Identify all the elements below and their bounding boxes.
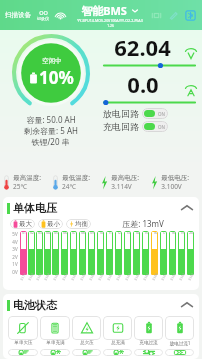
staticText: 05 [54, 231, 58, 235]
button[interactable]: 充电低温 [40, 349, 70, 356]
staticText: 11 [108, 231, 112, 235]
button[interactable]: 02 [27, 231, 35, 287]
button[interactable]: 单体电压 [7, 200, 195, 216]
button[interactable]: Edit [168, 10, 179, 21]
button[interactable] [104, 62, 195, 69]
staticText: 1V [12, 261, 18, 267]
button[interactable]: 最低电压: [150, 173, 200, 191]
button[interactable]: OO [37, 9, 49, 21]
staticText: 容量: 50.0 AH [26, 114, 76, 125]
staticText: 06 [63, 231, 67, 235]
button[interactable]: 06 [60, 231, 69, 287]
button[interactable]: 放电过流1 [165, 316, 194, 346]
staticText: 智能BMS [81, 3, 127, 18]
button[interactable]: 电池状态 [7, 297, 195, 313]
button[interactable]: 01 [19, 231, 27, 287]
staticText: 3.103 [124, 272, 132, 281]
button[interactable]: Layout [151, 10, 162, 21]
staticText: 09 [90, 231, 94, 235]
button[interactable]: 最大 [10, 219, 35, 229]
staticText: 总欠压 [80, 340, 94, 346]
staticText: OO [39, 9, 48, 16]
staticText: 最低电压: [161, 173, 189, 182]
button[interactable]: 最高电压: [100, 173, 150, 191]
button[interactable]: Wifi [55, 10, 66, 21]
staticText: 最高电压: [111, 173, 139, 182]
button[interactable]: 单串充满 [40, 316, 70, 346]
staticText: YY-BPU14-MOS-20S100A/YY-O2-2-F5A3 [77, 18, 143, 23]
button[interactable]: 单串欠压 [8, 316, 38, 346]
staticText: 3.102 [169, 272, 177, 281]
button[interactable]: 20 [186, 231, 195, 287]
staticText: 24℃ [62, 182, 76, 191]
button[interactable]: 12 [114, 231, 123, 287]
button[interactable]: 最低温度: [51, 173, 100, 191]
button[interactable]: 14 [132, 231, 141, 287]
staticText: 3.104 [133, 272, 141, 281]
button[interactable]: 11 [105, 231, 114, 287]
button[interactable]: 放电高温 [72, 349, 101, 356]
staticText: 空闲中 [42, 57, 62, 65]
button[interactable]: 19 [177, 231, 186, 287]
staticText: 10% [39, 66, 74, 89]
staticText: 20 [189, 231, 193, 235]
button[interactable]: 充电过流 [134, 316, 163, 346]
staticText: 3.103 [88, 272, 96, 281]
staticText: 02 [30, 231, 34, 235]
staticText: 16 [153, 231, 157, 235]
staticText: 单串充满 [46, 340, 65, 346]
button[interactable]: Bluetooth [185, 10, 196, 21]
button[interactable]: 总欠压 [72, 316, 101, 346]
staticText: 记录仪 [37, 16, 49, 21]
staticText: 最高温度: [13, 173, 41, 182]
staticText: 3.103 [52, 272, 60, 281]
button[interactable]: 04 [43, 231, 51, 287]
button[interactable]: Dropdown [131, 7, 139, 15]
button[interactable]: 10 [96, 231, 105, 287]
staticText: 0.0 [127, 69, 159, 99]
staticText: 04 [46, 231, 50, 235]
button[interactable]: 17 [159, 231, 168, 287]
staticText: 3.114 [19, 272, 27, 281]
staticText: 放电回路 [103, 108, 139, 119]
button[interactable]: 更多 [165, 349, 194, 356]
button[interactable]: 03 [35, 231, 43, 287]
staticText: 3.103 [178, 272, 186, 281]
button[interactable]: 最高温度: [2, 173, 51, 191]
button[interactable]: 08 [78, 231, 87, 287]
button[interactable]: 设置 [134, 349, 163, 356]
staticText: 5V [12, 231, 18, 237]
staticText: 总充满 [111, 340, 125, 346]
staticText: 19 [180, 231, 184, 235]
button[interactable]: 13 [123, 231, 132, 287]
staticText: 18 [171, 231, 175, 235]
button[interactable] [104, 99, 195, 106]
staticText: 3.103 [142, 272, 150, 281]
button[interactable]: 07 [69, 231, 78, 287]
button[interactable]: 空闲中 [12, 34, 90, 112]
staticText: 3.100V [161, 182, 182, 191]
staticText: 3.104 [43, 272, 51, 281]
button[interactable]: 充电高温 [8, 349, 38, 356]
button[interactable]: 最小 [38, 219, 63, 229]
staticText: 3.114V [111, 182, 132, 191]
staticText: 3.102 [27, 272, 35, 281]
button[interactable]: 总充满 [103, 316, 132, 346]
button[interactable]: 16 [150, 231, 159, 287]
button[interactable]: 均衡 [66, 219, 91, 229]
button[interactable]: 充电回路 [101, 121, 198, 132]
staticText: 铁锂/20 串 [31, 136, 70, 147]
staticText: 08 [81, 231, 85, 235]
staticText: 3.102 [79, 272, 87, 281]
button[interactable]: 15 [141, 231, 150, 287]
button[interactable]: 05 [51, 231, 60, 287]
staticText: 17 [162, 231, 166, 235]
button[interactable]: 扫描设备 [4, 11, 32, 19]
button[interactable]: 放电回路 [101, 108, 198, 119]
staticText: 放电过流1 [169, 340, 191, 346]
staticText: 3.101 [70, 272, 78, 281]
button[interactable]: 09 [87, 231, 96, 287]
button[interactable]: 18 [168, 231, 177, 287]
staticText: 03 [38, 231, 42, 235]
button[interactable]: 放电低温 [103, 349, 132, 356]
